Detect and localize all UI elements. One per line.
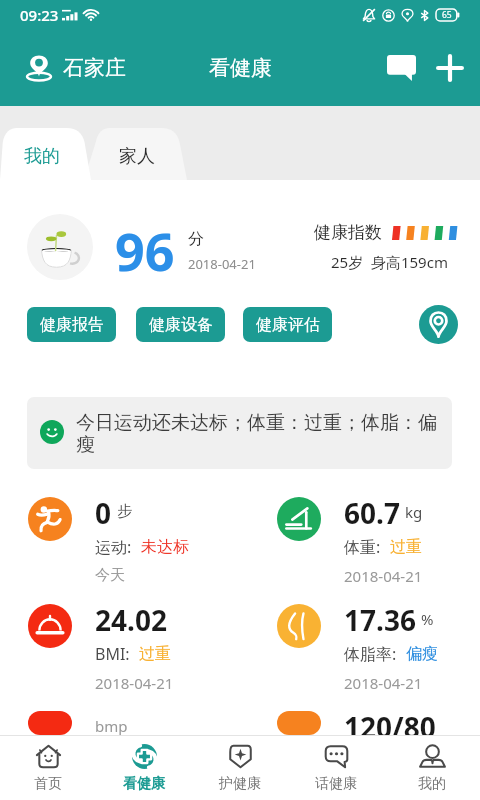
staticText: 17.36	[344, 601, 416, 639]
staticText: 96	[115, 215, 175, 281]
button[interactable]: 健康报告	[27, 307, 116, 342]
button[interactable]: 0	[28, 492, 240, 599]
button[interactable]: 健康设备	[136, 307, 225, 342]
staticText: 看健康	[123, 775, 165, 793]
button[interactable]: 24.02	[28, 599, 240, 706]
button[interactable]: 今日运动还未达标；体重：过重；体脂：偏瘦	[27, 397, 452, 469]
staticText: 体重:	[344, 536, 381, 558]
staticText: 石家庄	[63, 55, 126, 81]
button[interactable]: Location	[419, 305, 458, 344]
staticText: 0	[95, 494, 112, 532]
staticText: 65	[442, 9, 452, 21]
staticText: 健康报告	[40, 315, 104, 335]
staticText: 2018-04-21	[344, 673, 423, 693]
staticText: 2018-04-21	[188, 255, 256, 273]
staticText: 话健康	[315, 775, 357, 793]
button[interactable]: 我的	[0, 128, 80, 180]
button[interactable]: 17.36	[277, 599, 480, 706]
staticText: bmp	[95, 716, 128, 735]
staticText: 2018-04-21	[95, 673, 174, 693]
staticText: 偏瘦	[406, 644, 438, 664]
button[interactable]: 家人	[91, 128, 179, 180]
staticText: 60.7	[344, 494, 400, 532]
staticText: 体脂率:	[344, 643, 397, 665]
staticText: %	[421, 609, 434, 629]
staticText: 我的	[24, 145, 60, 168]
staticText: 健康评估	[256, 315, 320, 335]
staticText: 分	[188, 229, 204, 249]
staticText: 25岁 身高159cm	[331, 252, 448, 272]
staticText: 健康指数	[314, 222, 382, 243]
staticText: 运动:	[95, 536, 132, 558]
staticText: 家人	[119, 145, 155, 168]
staticText: 看健康	[209, 55, 272, 81]
button[interactable]: 健康评估	[243, 307, 332, 342]
staticText: 今天	[95, 566, 125, 585]
staticText: BMI:	[95, 643, 130, 665]
staticText: kg	[405, 502, 423, 522]
staticText: 2018-04-21	[344, 566, 423, 586]
button[interactable]: Messages	[381, 48, 421, 88]
button[interactable]: 我的	[384, 736, 480, 800]
staticText: 24.02	[95, 601, 167, 639]
button[interactable]: 话健康	[288, 736, 384, 800]
button[interactable]: 60.7	[277, 492, 480, 599]
button[interactable]: 首页	[0, 736, 96, 800]
staticText: 护健康	[219, 775, 261, 793]
staticText: 步	[117, 502, 132, 521]
button[interactable]: 护健康	[192, 736, 288, 800]
staticText: 09:23	[20, 5, 59, 25]
staticText: 我的	[418, 775, 446, 793]
button[interactable]: Add	[430, 48, 470, 88]
button[interactable]: 看健康	[96, 736, 192, 800]
staticText: 过重	[139, 644, 171, 664]
staticText: 健康设备	[149, 315, 213, 335]
staticText: 120/80	[344, 708, 436, 735]
staticText: 过重	[390, 537, 422, 557]
staticText: 未达标	[141, 537, 189, 557]
staticText: 今日运动还未达标；体重：过重；体脂：偏瘦	[76, 411, 450, 457]
button[interactable]: 石家庄	[0, 49, 134, 87]
staticText: 首页	[34, 775, 62, 793]
